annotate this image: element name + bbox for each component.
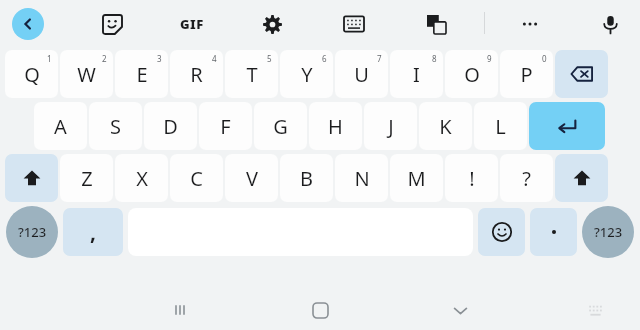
- staticText: I: [413, 61, 420, 88]
- staticText: 3: [157, 53, 162, 64]
- staticText: G: [273, 113, 288, 140]
- button[interactable]: Home: [290, 290, 350, 330]
- button[interactable]: G: [254, 102, 307, 150]
- staticText: V: [246, 165, 258, 192]
- button[interactable]: Translate: [420, 8, 452, 40]
- button[interactable]: ?: [500, 154, 553, 202]
- staticText: K: [439, 113, 452, 140]
- staticText: A: [54, 113, 67, 140]
- staticText: GIF: [180, 15, 204, 33]
- staticText: M: [407, 165, 426, 192]
- button[interactable]: Keyboard layout: [338, 8, 370, 40]
- button[interactable]: R: [170, 50, 223, 98]
- staticText: F: [220, 113, 231, 140]
- button[interactable]: P: [500, 50, 553, 98]
- button[interactable]: Hide keyboard: [430, 290, 490, 330]
- button[interactable]: I: [390, 50, 443, 98]
- staticText: 8: [432, 53, 437, 64]
- button[interactable]: Switch keyboard: [570, 290, 620, 330]
- button[interactable]: E: [115, 50, 168, 98]
- button[interactable]: GIF: [170, 8, 214, 40]
- staticText: 6: [322, 53, 327, 64]
- staticText: Z: [81, 165, 93, 192]
- staticText: 0: [542, 53, 547, 64]
- staticText: ?: [522, 165, 531, 192]
- staticText: S: [110, 113, 121, 140]
- staticText: ?123: [594, 223, 623, 241]
- button[interactable]: B: [280, 154, 333, 202]
- staticText: U: [354, 61, 369, 88]
- button[interactable]: N: [335, 154, 388, 202]
- button[interactable]: T: [225, 50, 278, 98]
- button[interactable]: More options: [514, 8, 546, 40]
- staticText: 2: [102, 53, 107, 64]
- button[interactable]: Y: [280, 50, 333, 98]
- button[interactable]: Back: [12, 8, 44, 40]
- button[interactable]: Shift: [5, 154, 58, 202]
- staticText: H: [328, 113, 343, 140]
- staticText: O: [464, 61, 480, 88]
- button[interactable]: Shift right: [555, 154, 608, 202]
- button[interactable]: X: [115, 154, 168, 202]
- staticText: J: [388, 113, 394, 140]
- button[interactable]: A: [34, 102, 87, 150]
- button[interactable]: Stickers: [96, 8, 128, 40]
- button[interactable]: Settings: [256, 8, 288, 40]
- staticText: E: [136, 61, 148, 88]
- button[interactable]: Comma: [63, 208, 123, 256]
- staticText: Q: [24, 61, 40, 88]
- button[interactable]: U: [335, 50, 388, 98]
- staticText: ,: [90, 218, 96, 247]
- staticText: B: [300, 165, 313, 192]
- staticText: 5: [267, 53, 272, 64]
- button[interactable]: Recents: [150, 290, 210, 330]
- staticText: R: [190, 61, 203, 88]
- staticText: Y: [301, 61, 313, 88]
- button[interactable]: F: [199, 102, 252, 150]
- button[interactable]: M: [390, 154, 443, 202]
- staticText: 9: [487, 53, 492, 64]
- staticText: !: [469, 165, 475, 192]
- button[interactable]: Backspace: [555, 50, 608, 98]
- button[interactable]: !: [445, 154, 498, 202]
- staticText: T: [246, 61, 258, 88]
- button[interactable]: J: [364, 102, 417, 150]
- button[interactable]: Enter: [529, 102, 605, 150]
- staticText: C: [190, 165, 203, 192]
- staticText: L: [495, 113, 506, 140]
- staticText: 1: [47, 53, 52, 64]
- button[interactable]: Emoji: [478, 208, 525, 256]
- button[interactable]: C: [170, 154, 223, 202]
- staticText: ?123: [18, 223, 47, 241]
- button[interactable]: H: [309, 102, 362, 150]
- staticText: D: [163, 113, 178, 140]
- button[interactable]: Period: [530, 208, 577, 256]
- staticText: W: [77, 61, 96, 88]
- button[interactable]: K: [419, 102, 472, 150]
- staticText: 4: [212, 53, 217, 64]
- button[interactable]: ?123: [582, 206, 634, 258]
- button[interactable]: Z: [60, 154, 113, 202]
- button[interactable]: D: [144, 102, 197, 150]
- staticText: N: [354, 165, 370, 192]
- button[interactable]: Q: [5, 50, 58, 98]
- staticText: P: [520, 61, 533, 88]
- button[interactable]: W: [60, 50, 113, 98]
- button[interactable]: O: [445, 50, 498, 98]
- button[interactable]: ?123: [6, 206, 58, 258]
- staticText: 7: [377, 53, 382, 64]
- staticText: X: [136, 165, 148, 192]
- button[interactable]: L: [474, 102, 527, 150]
- button[interactable]: S: [89, 102, 142, 150]
- button[interactable]: V: [225, 154, 278, 202]
- button[interactable]: Voice input: [594, 8, 626, 40]
